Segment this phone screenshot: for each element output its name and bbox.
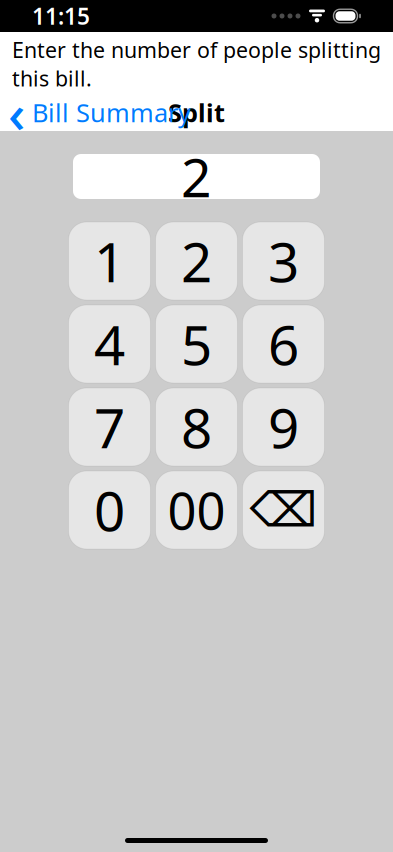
button[interactable]: Delete	[242, 471, 324, 549]
staticText: 11:15	[32, 1, 90, 31]
button[interactable]: 00	[155, 471, 237, 549]
staticText: Bill Summary	[32, 95, 191, 129]
staticText: 3	[268, 225, 299, 297]
staticText: 6	[268, 308, 299, 380]
button[interactable]: 7	[68, 388, 150, 466]
staticText: 7	[94, 391, 125, 463]
staticText: ‹	[8, 77, 25, 148]
staticText: 2	[181, 225, 212, 297]
staticText: 1	[94, 225, 125, 297]
staticText: 8	[181, 391, 212, 463]
button[interactable]: 4	[68, 305, 150, 383]
staticText: 00	[167, 476, 225, 544]
staticText: 2	[181, 141, 212, 212]
button[interactable]: 1	[68, 222, 150, 300]
button[interactable]: 2	[155, 222, 237, 300]
staticText: 0	[94, 474, 125, 546]
staticText: Split	[168, 95, 225, 129]
staticText: Enter the number of people splitting thi…	[12, 36, 381, 92]
button[interactable]: 3	[242, 222, 324, 300]
staticText: 9	[268, 391, 299, 463]
button[interactable]: 0	[68, 471, 150, 549]
button[interactable]: 5	[155, 305, 237, 383]
staticText: 4	[94, 308, 125, 380]
button[interactable]: 6	[242, 305, 324, 383]
button[interactable]: 8	[155, 388, 237, 466]
staticText: ⌫	[249, 483, 317, 537]
staticText: 5	[181, 308, 212, 380]
button[interactable]: ‹	[0, 92, 201, 132]
button[interactable]: 9	[242, 388, 324, 466]
